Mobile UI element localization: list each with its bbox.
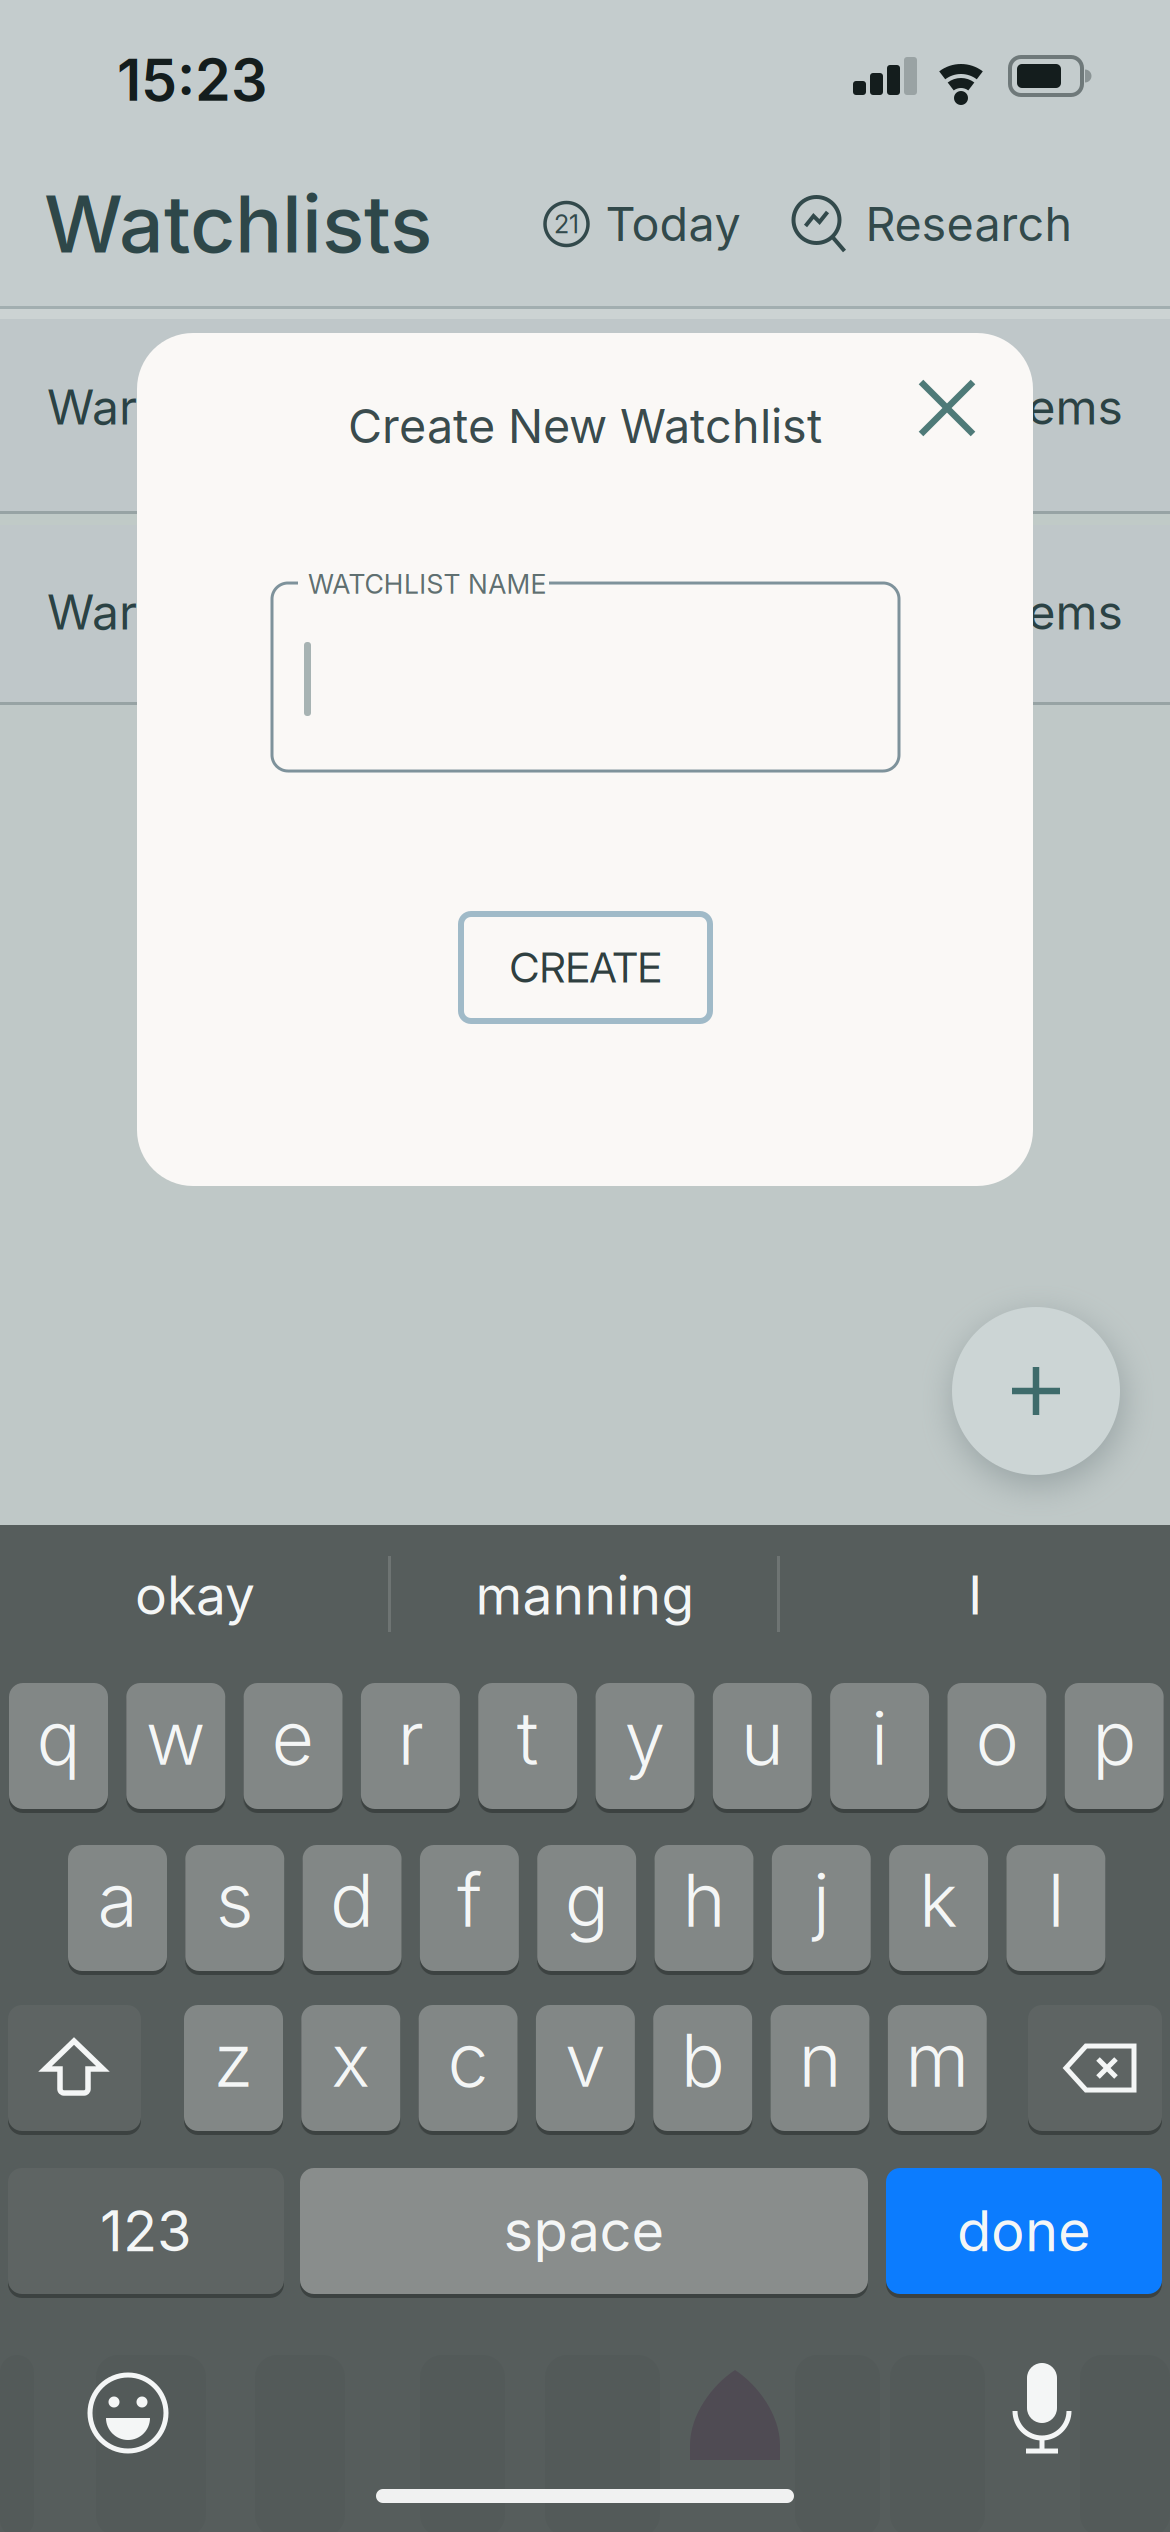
button[interactable] (1007, 2363, 1077, 2457)
button[interactable]: 21 (543, 196, 740, 252)
staticText: c (448, 2016, 489, 2104)
staticText: Research (865, 196, 1072, 252)
staticText: h (682, 1856, 725, 1944)
staticText: e (272, 1694, 315, 1782)
staticText: q (36, 1694, 80, 1782)
staticText: ems (1027, 583, 1122, 641)
staticText: y (624, 1694, 665, 1782)
button[interactable]: z (184, 2005, 283, 2131)
staticText: b (681, 2016, 725, 2104)
staticText: g (565, 1856, 609, 1944)
button[interactable]: space (300, 2168, 868, 2294)
button[interactable]: Research (791, 195, 1072, 253)
button[interactable]: u (713, 1683, 812, 1809)
button[interactable]: done (886, 2168, 1162, 2294)
button[interactable]: v (536, 2005, 635, 2131)
staticText: n (798, 2016, 841, 2104)
staticText: 15:23 (117, 45, 267, 115)
button[interactable]: j (772, 1845, 871, 1971)
button[interactable]: y (595, 1683, 694, 1809)
button[interactable]: p (1065, 1683, 1164, 1809)
staticText: ems (1027, 378, 1122, 436)
button[interactable]: WATCHLIST NAME (272, 564, 899, 771)
staticText: okay (135, 1563, 255, 1627)
button[interactable]: q (9, 1683, 108, 1809)
staticText: I (968, 1563, 982, 1627)
button[interactable]: h (654, 1845, 753, 1971)
staticText: 21 (554, 209, 579, 239)
button[interactable]: d (303, 1845, 402, 1971)
staticText: o (975, 1694, 1018, 1782)
staticText: l (1047, 1856, 1064, 1944)
staticText: 123 (100, 2197, 192, 2265)
button[interactable]: n (770, 2005, 869, 2131)
staticText: space (503, 2197, 664, 2265)
button[interactable]: l (1006, 1845, 1105, 1971)
staticText: v (565, 2016, 606, 2104)
staticText: p (1092, 1694, 1136, 1782)
staticText: done (957, 2197, 1091, 2265)
button[interactable]: c (419, 2005, 518, 2131)
button[interactable]: k (889, 1845, 988, 1971)
staticText: x (331, 2016, 370, 2104)
staticText: Today (605, 196, 740, 252)
staticText: t (517, 1694, 539, 1782)
staticText: s (216, 1856, 254, 1944)
button[interactable]: m (888, 2005, 987, 2131)
button[interactable]: b (653, 2005, 752, 2131)
button[interactable]: o (947, 1683, 1046, 1809)
staticText: manning (475, 1563, 694, 1627)
staticText: CREATE (509, 942, 661, 992)
button[interactable]: g (537, 1845, 636, 1971)
button[interactable] (86, 2371, 170, 2455)
staticText: u (741, 1694, 784, 1782)
button[interactable]: War (0, 525, 1170, 702)
staticText: r (397, 1694, 423, 1782)
staticText: m (905, 2016, 969, 2104)
staticText: w (146, 1694, 206, 1782)
button[interactable] (1028, 2005, 1162, 2131)
staticText: a (97, 1856, 137, 1944)
button[interactable]: r (361, 1683, 460, 1809)
staticText: j (813, 1856, 830, 1944)
button[interactable]: War (0, 319, 1170, 511)
staticText: Create New Watchlist (348, 398, 822, 454)
button[interactable]: CREATE (461, 914, 710, 1021)
button[interactable]: s (185, 1845, 284, 1971)
staticText: f (457, 1856, 482, 1944)
button[interactable]: manning (395, 1545, 775, 1645)
button[interactable] (952, 1307, 1120, 1475)
button[interactable]: i (830, 1683, 929, 1809)
staticText: k (919, 1856, 958, 1944)
button[interactable]: 123 (8, 2168, 284, 2294)
button[interactable]: a (68, 1845, 167, 1971)
button[interactable]: x (301, 2005, 400, 2131)
staticText: WATCHLIST NAME (308, 568, 547, 600)
staticText: z (213, 2016, 253, 2104)
staticText: Watchlists (44, 176, 432, 272)
staticText: d (330, 1856, 374, 1944)
button[interactable]: w (126, 1683, 225, 1809)
button[interactable]: f (420, 1845, 519, 1971)
button[interactable]: okay (5, 1545, 385, 1645)
button[interactable] (8, 2005, 141, 2131)
staticText: War (47, 378, 137, 436)
button[interactable]: t (478, 1683, 577, 1809)
staticText: i (871, 1694, 888, 1782)
staticText: War (47, 583, 137, 641)
button[interactable]: I (785, 1545, 1165, 1645)
button[interactable] (921, 382, 973, 434)
button[interactable]: e (244, 1683, 343, 1809)
